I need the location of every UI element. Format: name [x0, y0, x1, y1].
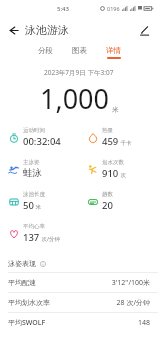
button[interactable]: 主泳姿: [0, 158, 79, 180]
button[interactable]: 趟数: [79, 190, 158, 213]
button[interactable]: 详情: [102, 45, 125, 60]
button[interactable]: 泳池长度: [0, 190, 79, 213]
button[interactable]: 分段: [34, 45, 57, 60]
button[interactable]: 平均SWOLF: [0, 313, 158, 332]
staticText: 148: [137, 318, 150, 328]
staticText: 划水次数: [102, 159, 124, 166]
button[interactable]: 平均划水次率: [0, 293, 158, 312]
button[interactable]: 图表: [68, 45, 91, 60]
staticText: 分段: [38, 46, 53, 55]
button[interactable]: 编辑: [134, 20, 154, 40]
button[interactable]: 热量: [79, 126, 158, 149]
staticText: 米: [112, 106, 119, 114]
staticText: 137: [23, 231, 40, 244]
staticText: 00:32:04: [23, 135, 61, 148]
staticText: 平均配速: [8, 278, 111, 287]
staticText: 米: [34, 203, 41, 211]
staticText: 平均划水次率: [8, 298, 116, 307]
staticText: 459: [102, 135, 119, 148]
staticText: 28 次/分钟: [116, 298, 150, 308]
staticText: 详情: [106, 46, 121, 55]
staticText: 蛙泳: [23, 167, 42, 179]
staticText: 次: [119, 171, 126, 179]
button[interactable]: 运动时间: [0, 126, 79, 149]
staticText: 1,000: [40, 80, 110, 117]
staticText: 次/分钟: [40, 235, 60, 243]
staticText: 3'12''/100米: [111, 278, 150, 288]
staticText: 运动时间: [23, 127, 45, 134]
button[interactable]: 说明: [38, 259, 47, 268]
staticText: 910: [102, 167, 119, 180]
staticText: 0196: [107, 5, 120, 12]
button[interactable]: 返回: [3, 20, 23, 40]
staticText: 图表: [72, 46, 87, 55]
button[interactable]: 划水次数: [79, 158, 158, 181]
staticText: 热量: [102, 127, 113, 134]
staticText: 平均心率: [23, 223, 45, 230]
button[interactable]: 平均配速: [0, 273, 158, 292]
staticText: 泳池长度: [23, 191, 45, 198]
staticText: 主泳姿: [23, 159, 40, 166]
staticText: 泳池游泳: [25, 23, 69, 37]
staticText: 泳姿表现: [8, 259, 36, 268]
button[interactable]: 平均心率: [0, 222, 79, 245]
staticText: 50: [23, 199, 34, 212]
staticText: 趟数: [102, 191, 113, 198]
staticText: 平均SWOLF: [8, 318, 137, 328]
staticText: 2023年7月9日 下午3:07: [44, 68, 114, 77]
staticText: 20: [102, 199, 113, 212]
staticText: 千卡: [119, 139, 132, 147]
staticText: 5:43: [57, 5, 69, 13]
